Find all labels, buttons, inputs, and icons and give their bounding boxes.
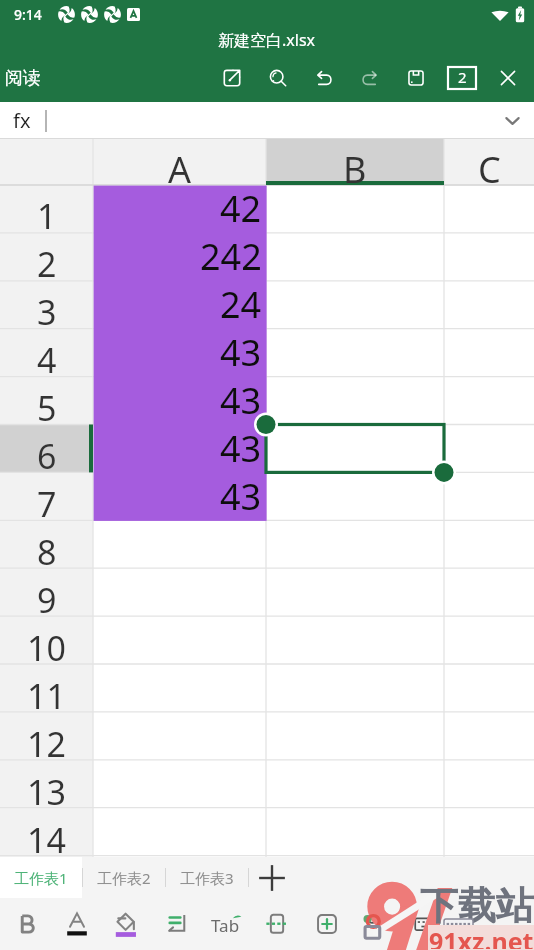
staticText: 43	[220, 424, 262, 472]
staticText: 2	[37, 241, 57, 287]
staticText: 10	[27, 625, 66, 671]
staticText: 14	[27, 817, 66, 863]
staticText: 9	[37, 577, 57, 623]
staticText: 6	[37, 433, 57, 479]
button[interactable]: Merge cells	[252, 898, 302, 950]
staticText: 3	[37, 289, 57, 335]
staticText: 1	[37, 193, 57, 239]
button[interactable]: Search	[255, 55, 301, 101]
button[interactable]: Text colour	[52, 898, 102, 950]
staticText: 工作表1	[14, 868, 68, 888]
button[interactable]: Undo	[301, 55, 347, 101]
staticText: fx	[13, 107, 31, 134]
staticText: 工作表3	[180, 868, 234, 888]
staticText: 24	[220, 280, 262, 328]
staticText: C	[478, 145, 501, 191]
staticText: A	[168, 145, 192, 191]
staticText: 42	[220, 184, 262, 232]
staticText: 2	[458, 67, 467, 87]
button[interactable]: Insert link	[352, 898, 402, 950]
staticText: 4	[37, 337, 57, 383]
button[interactable]: Keyboard	[402, 898, 452, 950]
button[interactable]: 工作表3	[166, 857, 248, 898]
staticText: Tab	[211, 914, 240, 937]
button[interactable]: Redo	[347, 55, 393, 101]
staticText: 工作表2	[97, 868, 151, 888]
button[interactable]: Save	[393, 55, 439, 101]
staticText: B	[343, 145, 367, 191]
button[interactable]: Close	[485, 55, 531, 101]
button[interactable]: Insert cells	[302, 898, 352, 950]
staticText: 43	[220, 376, 262, 424]
staticText: 91xz.net	[429, 924, 534, 949]
staticText: 新建空白.xlsx	[218, 29, 316, 51]
button[interactable]: Bold	[2, 898, 52, 950]
button[interactable]: Alignment	[152, 898, 202, 950]
button[interactable]: Share	[209, 55, 255, 101]
staticText: 阅读	[5, 67, 41, 90]
button[interactable]: Fill colour	[102, 898, 152, 950]
button[interactable]: Add sheet	[249, 857, 294, 898]
button[interactable]: 阅读	[0, 59, 51, 98]
button[interactable]: 工作表1	[0, 857, 82, 898]
button[interactable]: Tab indent	[202, 898, 252, 950]
button[interactable]: 工作表2	[83, 857, 165, 898]
staticText: 43	[220, 472, 262, 520]
staticText: 13	[27, 769, 66, 815]
staticText: 8	[37, 529, 57, 575]
staticText: 12	[27, 721, 66, 767]
staticText: 7	[37, 481, 57, 527]
button[interactable]: Open documents, 2	[439, 55, 485, 101]
staticText: 下载站	[420, 882, 534, 930]
staticText: 11	[27, 673, 66, 719]
button[interactable]: Expand formula bar	[490, 102, 534, 139]
staticText: 9:14	[14, 5, 42, 24]
staticText: 242	[200, 232, 262, 280]
staticText: 43	[220, 328, 262, 376]
staticText: 5	[37, 385, 57, 431]
